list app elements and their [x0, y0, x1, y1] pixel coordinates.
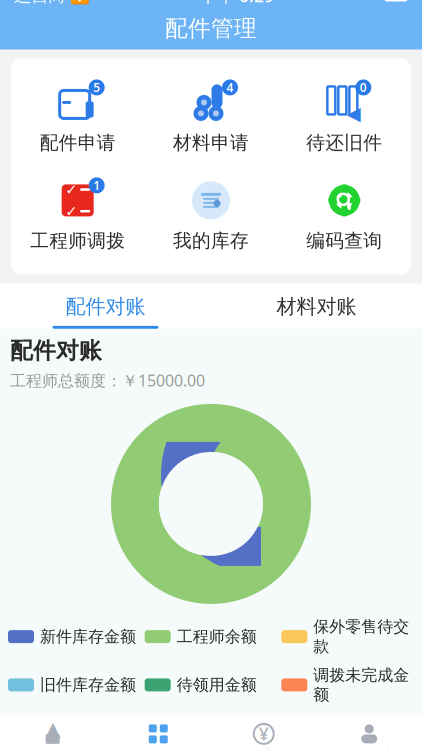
- staticText: 保外零售待交款: [313, 617, 409, 656]
- button[interactable]: ¥: [211, 717, 316, 750]
- staticText: 新件库存金额: [40, 627, 136, 646]
- staticText: 待还旧件: [306, 131, 382, 154]
- button[interactable]: ▲: [0, 717, 105, 750]
- button[interactable]: 4: [144, 74, 278, 160]
- button[interactable]: 5: [11, 74, 144, 160]
- button[interactable]: 配件: [105, 717, 211, 750]
- staticText: 编码查询: [306, 229, 382, 252]
- staticText: 运营商: [14, 0, 65, 6]
- staticText: 工程师总额度：￥15000.00: [10, 370, 205, 391]
- button[interactable]: 个人中心: [316, 717, 422, 750]
- staticText: ✓: [65, 181, 77, 198]
- button[interactable]: 配件对账: [0, 283, 211, 329]
- staticText: ▲: [45, 717, 60, 740]
- staticText: 下午 6:29: [200, 0, 274, 7]
- button[interactable]: 我的库存: [144, 172, 278, 258]
- staticText: ¥: [259, 722, 269, 745]
- staticText: 工程师调拨: [30, 229, 125, 252]
- staticText: 收入: [251, 748, 277, 750]
- staticText: 配件申请: [40, 131, 116, 154]
- button[interactable]: 编码查询: [278, 172, 411, 258]
- staticText: ◀: [346, 103, 360, 124]
- staticText: 待领用金额: [177, 675, 257, 695]
- button[interactable]: 材料对账: [211, 283, 422, 329]
- staticText: ✓: [65, 203, 77, 219]
- button[interactable]: ◀: [278, 74, 411, 160]
- staticText: 我的库存: [173, 229, 249, 252]
- staticText: 4: [226, 79, 233, 95]
- staticText: 工程师余额: [177, 627, 257, 646]
- staticText: 🛜: [70, 0, 90, 5]
- staticText: 配件对账: [10, 337, 102, 365]
- staticText: 配件管理: [165, 14, 257, 42]
- staticText: 1: [93, 177, 100, 193]
- staticText: 配件对账: [65, 294, 145, 319]
- staticText: 0: [360, 79, 367, 95]
- staticText: 旧件库存金额: [40, 675, 136, 695]
- staticText: 5: [93, 79, 100, 95]
- button[interactable]: ✓: [11, 172, 144, 258]
- staticText: 材料申请: [173, 131, 249, 154]
- staticText: 材料对账: [276, 294, 356, 319]
- staticText: 个人中心: [343, 748, 395, 750]
- staticText: 调拨未完成金额: [313, 665, 409, 705]
